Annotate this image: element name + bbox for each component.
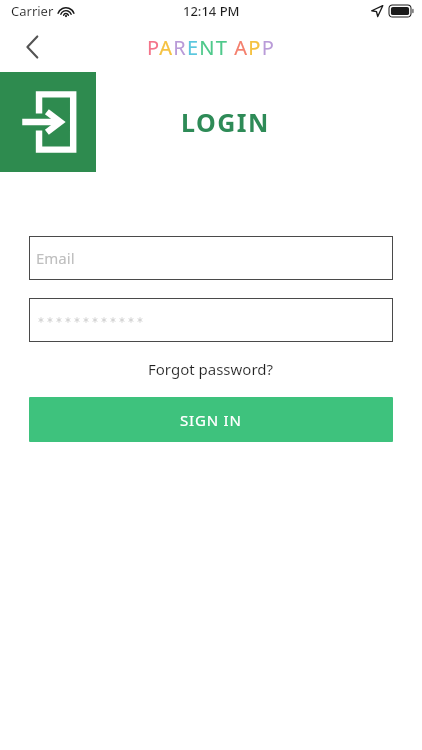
staticText: LOGIN	[181, 105, 270, 139]
button[interactable]: SIGN IN	[29, 397, 393, 442]
button[interactable]	[29, 298, 393, 342]
button[interactable]: Email	[29, 236, 393, 280]
button[interactable]: Forgot password?	[142, 357, 280, 381]
button[interactable]: Back	[10, 25, 54, 69]
staticText: Carrier	[11, 2, 54, 20]
staticText: SIGN IN	[180, 410, 242, 430]
staticText: Email	[36, 248, 75, 268]
staticText: Forgot password?	[148, 359, 274, 379]
staticText: 12:14 PM	[183, 2, 240, 20]
staticText: PARENT APP	[147, 34, 275, 61]
